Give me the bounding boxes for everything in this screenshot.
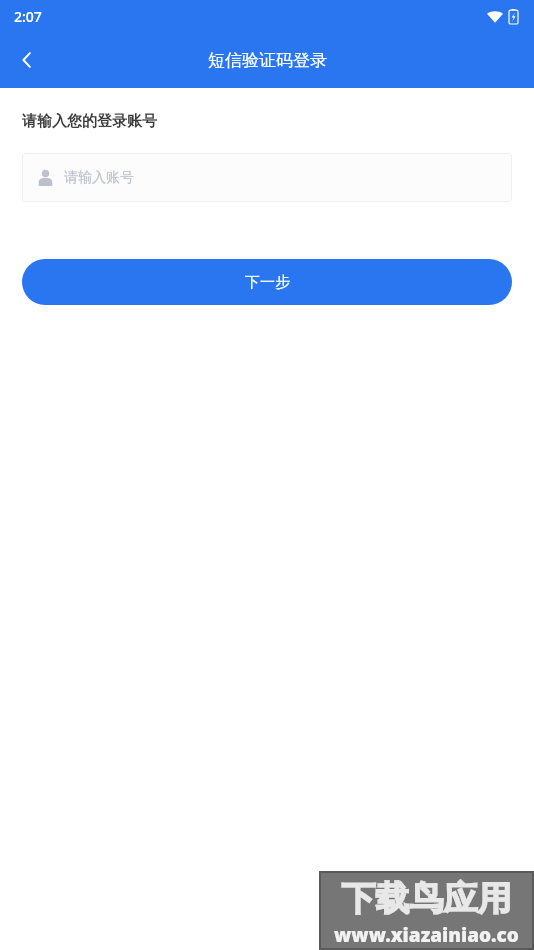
button[interactable]: 下一步: [22, 259, 512, 305]
staticText: www.xiazainiao.com: [328, 922, 525, 944]
staticText: 下一步: [245, 273, 290, 292]
staticText: 短信验证码登录: [208, 50, 327, 71]
staticText: 请输入您的登录账号: [22, 112, 157, 131]
staticText: 请输入账号: [64, 169, 134, 187]
button[interactable]: 请输入账号: [22, 153, 512, 202]
button[interactable]: Back: [0, 33, 54, 87]
staticText: 2:07: [14, 7, 42, 26]
staticText: 下载鸟应用: [328, 877, 525, 920]
